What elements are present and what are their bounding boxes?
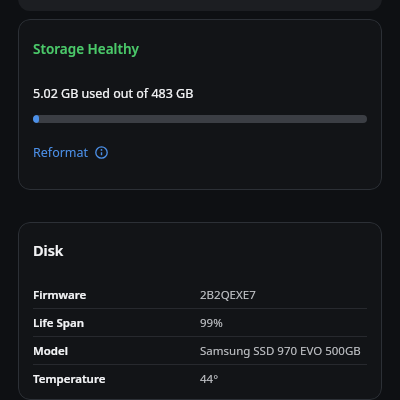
staticText: 2B2QEXE7 <box>200 287 256 303</box>
button[interactable]: Temperature <box>33 365 367 392</box>
staticText: Firmware <box>33 287 87 303</box>
staticText: Reformat <box>33 144 89 161</box>
staticText: Disk <box>33 240 64 260</box>
staticText: 99% <box>200 315 223 331</box>
staticText: Storage Healthy <box>33 40 139 58</box>
other: Reformat information <box>95 146 108 159</box>
staticText: Life Span <box>33 315 85 331</box>
staticText: Samsung SSD 970 EVO 500GB <box>200 343 361 359</box>
button[interactable]: Reformat <box>33 144 108 161</box>
staticText: 5.02 GB used out of 483 GB <box>33 85 194 102</box>
button[interactable]: Life Span <box>33 309 367 336</box>
button[interactable]: Model <box>33 337 367 364</box>
staticText: 44° <box>200 371 219 387</box>
staticText: Temperature <box>33 371 106 387</box>
button[interactable]: Firmware <box>33 281 367 308</box>
staticText: Model <box>33 343 68 359</box>
